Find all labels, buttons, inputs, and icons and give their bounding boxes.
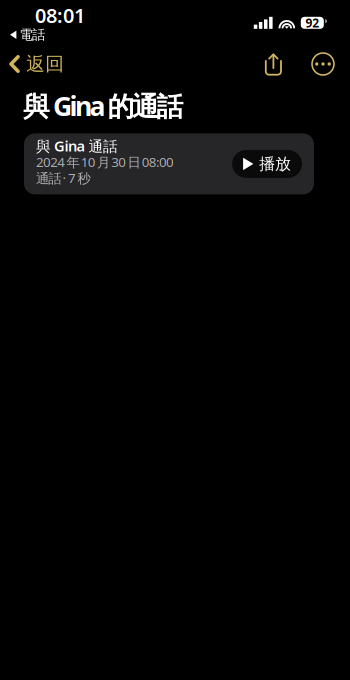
button[interactable]: 更多	[304, 49, 342, 79]
staticText: 與 Gina 通話	[36, 136, 118, 156]
staticText: 與 Gina 的通話	[23, 88, 183, 123]
button[interactable]: 返回	[0, 45, 64, 82]
staticText: 通話 · 7 秒	[36, 169, 90, 187]
staticText: 播放	[259, 154, 291, 174]
staticText: 08:01	[35, 2, 85, 29]
button[interactable]: 播放	[232, 150, 302, 178]
staticText: 返回	[26, 52, 64, 75]
staticText: 92	[305, 15, 319, 31]
staticText: 電話	[19, 27, 45, 43]
button[interactable]: 分享	[254, 48, 293, 79]
staticText: 2024 年 10 月 30 日 08:00	[36, 153, 174, 171]
